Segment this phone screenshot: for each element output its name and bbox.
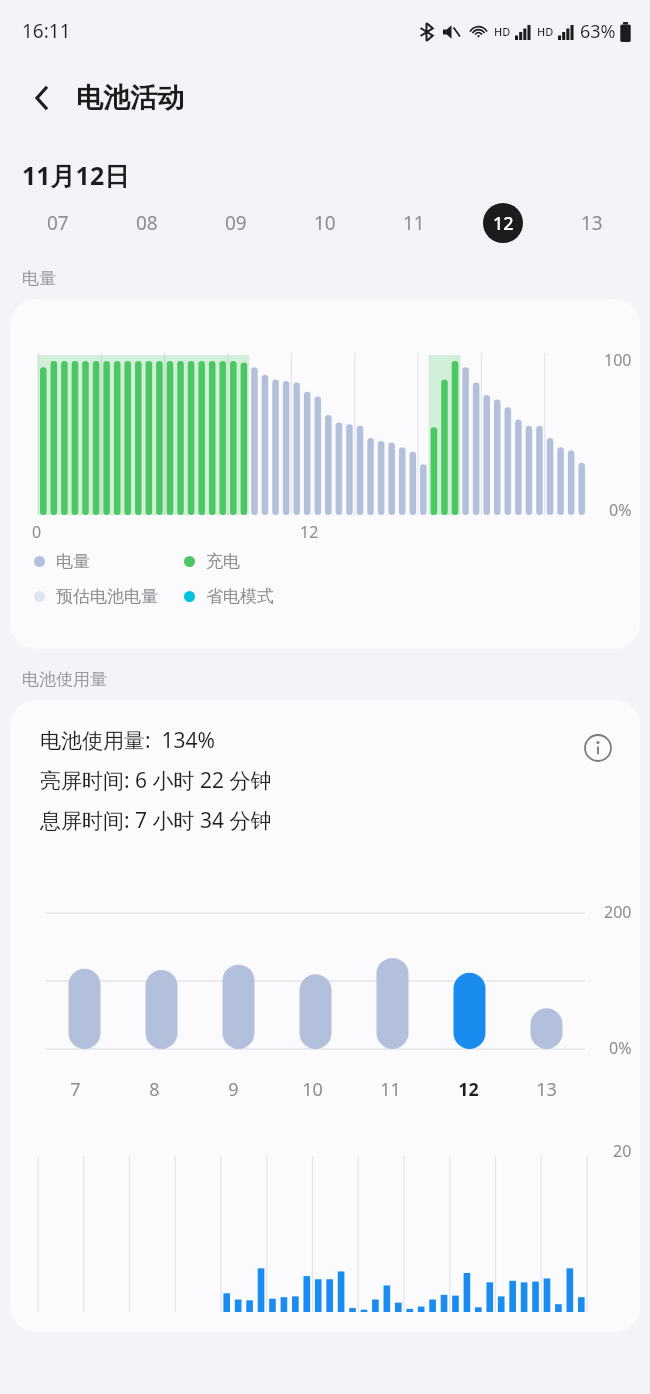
button[interactable]: 11 — [369, 197, 458, 249]
staticText: 0% — [609, 1037, 632, 1059]
button[interactable]: 13 — [547, 197, 636, 249]
staticText: 09 — [225, 210, 247, 236]
staticText: 电池使用量: 134% — [40, 726, 216, 755]
staticText: 10 — [302, 1077, 323, 1102]
staticText: 预估电池电量 — [56, 586, 158, 607]
staticText: 13 — [536, 1077, 557, 1102]
staticText: 63% — [580, 19, 616, 44]
staticText: 7 — [70, 1077, 81, 1102]
staticText: 20 — [613, 1140, 632, 1162]
staticText: 亮屏时间: 6 小时 22 分钟 — [40, 766, 272, 795]
staticText: 息屏时间: 7 小时 34 分钟 — [40, 806, 272, 835]
staticText: 电池使用量 — [22, 669, 107, 690]
staticText: 16:11 — [22, 18, 71, 44]
staticText: 12 — [493, 211, 514, 236]
button[interactable]: 09 — [191, 197, 280, 249]
button[interactable]: 07 — [14, 197, 102, 249]
button[interactable]: Info — [578, 728, 618, 768]
staticText: HD — [537, 24, 554, 39]
staticText: 11月12日 — [22, 158, 130, 192]
button[interactable]: 08 — [102, 197, 191, 249]
staticText: 电池活动 — [76, 81, 184, 115]
staticText: 电量 — [56, 551, 90, 572]
staticText: 100 — [604, 349, 632, 371]
staticText: 10 — [314, 210, 336, 236]
staticText: 11 — [403, 210, 425, 236]
button[interactable]: 12 — [458, 197, 547, 249]
staticText: 充电 — [206, 551, 240, 572]
staticText: 电量 — [22, 268, 56, 289]
staticText: 0% — [609, 499, 632, 521]
staticText: 08 — [136, 210, 158, 236]
staticText: 13 — [581, 210, 603, 236]
staticText: 8 — [149, 1077, 160, 1102]
staticText: 省电模式 — [206, 586, 274, 607]
staticText: 9 — [228, 1077, 239, 1102]
button[interactable]: Back — [20, 76, 64, 120]
staticText: 0 — [32, 521, 42, 543]
staticText: HD — [494, 24, 511, 39]
staticText: 11 — [380, 1077, 401, 1102]
staticText: 07 — [47, 210, 69, 236]
staticText: 12 — [300, 521, 319, 543]
staticText: 12 — [458, 1077, 479, 1102]
button[interactable]: 10 — [280, 197, 369, 249]
staticText: 200 — [604, 901, 632, 923]
